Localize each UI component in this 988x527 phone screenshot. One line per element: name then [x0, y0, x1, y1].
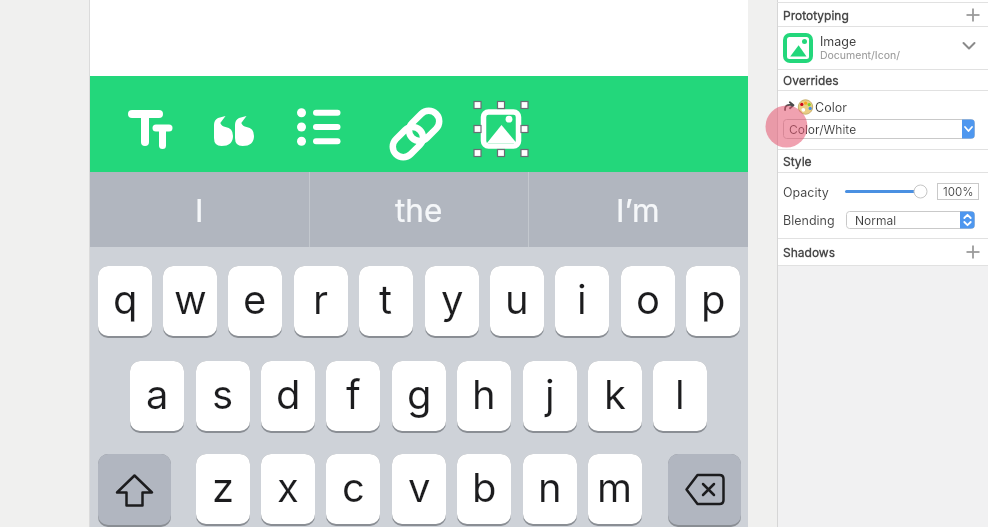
button[interactable] [124, 100, 180, 156]
button[interactable]: k [588, 361, 642, 431]
button[interactable]: b [457, 454, 511, 524]
button[interactable]: j [523, 361, 577, 431]
button[interactable]: e [228, 266, 282, 336]
button[interactable]: I [90, 172, 309, 247]
button[interactable]: r [294, 266, 348, 336]
staticText: t [379, 275, 393, 323]
button[interactable]: u [490, 266, 544, 336]
button[interactable] [966, 245, 980, 259]
staticText: Document/Icon/ [820, 49, 900, 62]
button[interactable]: o [621, 266, 675, 336]
button[interactable]: h [457, 361, 511, 431]
staticText: b [472, 463, 497, 511]
staticText: f [346, 370, 361, 418]
button[interactable]: Normal [846, 211, 975, 229]
button[interactable]: s [196, 361, 250, 431]
staticText: Prototyping [783, 8, 849, 23]
button[interactable] [777, 27, 988, 69]
button[interactable]: c [326, 454, 380, 524]
staticText: Opacity [783, 185, 829, 200]
staticText: w [174, 275, 207, 323]
staticText: I’m [616, 191, 660, 229]
staticText: k [604, 370, 626, 418]
staticText: Normal [855, 213, 897, 228]
button[interactable]: n [523, 454, 577, 524]
staticText: p [701, 275, 726, 323]
staticText: z [212, 463, 235, 511]
staticText: Style [783, 154, 812, 169]
button[interactable]: g [392, 361, 446, 431]
button[interactable]: the [309, 172, 528, 247]
button[interactable]: f [326, 361, 380, 431]
staticText: d [276, 370, 301, 418]
staticText: m [597, 463, 633, 511]
button[interactable] [783, 33, 813, 63]
staticText: Color [815, 100, 847, 114]
staticText: j [545, 370, 555, 418]
staticText: l [675, 370, 685, 418]
staticText: g [407, 370, 432, 418]
button[interactable]: z [196, 454, 250, 524]
staticText: q [113, 275, 138, 323]
button[interactable] [966, 8, 980, 22]
button[interactable] [668, 454, 741, 525]
staticText: Color/White [789, 122, 857, 137]
staticText: h [472, 370, 496, 418]
button[interactable]: p [686, 266, 740, 336]
staticText: i [577, 275, 587, 323]
staticText: Overrides [783, 73, 839, 88]
button[interactable]: i [555, 266, 609, 336]
staticText: s [212, 370, 234, 418]
staticText: Blending [783, 213, 835, 228]
staticText: the [395, 191, 443, 229]
staticText: o [636, 275, 660, 323]
button[interactable] [473, 101, 529, 157]
button[interactable] [388, 106, 444, 162]
staticText: n [538, 463, 562, 511]
staticText: e [243, 275, 267, 323]
staticText: x [277, 463, 299, 511]
button[interactable]: w [163, 266, 217, 336]
button[interactable] [206, 103, 262, 159]
button[interactable]: m [588, 454, 642, 524]
button[interactable]: d [261, 361, 315, 431]
staticText: I [195, 191, 204, 229]
staticText: u [505, 275, 529, 323]
button[interactable] [98, 454, 171, 525]
button[interactable]: l [653, 361, 707, 431]
button[interactable]: I’m [528, 172, 748, 247]
staticText: a [146, 370, 169, 418]
staticText: v [408, 463, 431, 511]
button[interactable]: y [425, 266, 479, 336]
staticText: 100% [943, 185, 974, 199]
staticText: Shadows [783, 245, 836, 260]
button[interactable]: x [261, 454, 315, 524]
button[interactable]: t [359, 266, 413, 336]
button[interactable]: a [130, 361, 184, 431]
button[interactable]: Color/White [783, 119, 975, 139]
staticText: r [313, 275, 329, 323]
staticText: y [441, 275, 464, 323]
button[interactable]: 100% [937, 183, 979, 200]
staticText: c [342, 463, 365, 511]
staticText: Image [820, 34, 857, 49]
button[interactable]: v [392, 454, 446, 524]
button[interactable] [293, 99, 349, 155]
button[interactable]: q [98, 266, 152, 336]
